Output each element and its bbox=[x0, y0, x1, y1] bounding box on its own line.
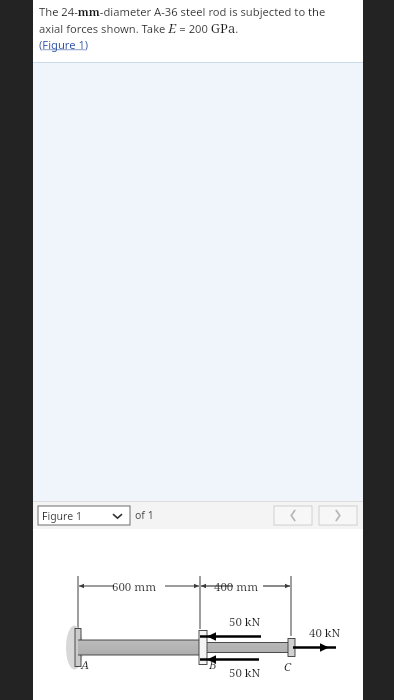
staticText: (Figure 1) bbox=[39, 37, 89, 52]
staticText: 40 kN bbox=[309, 625, 341, 641]
staticText: 50 kN bbox=[229, 614, 261, 630]
staticText: 50 kN bbox=[229, 665, 261, 681]
staticText: of 1 bbox=[135, 508, 154, 522]
button[interactable]: Next figure bbox=[319, 506, 357, 525]
button[interactable]: Figure 1 bbox=[38, 506, 130, 525]
staticText: Figure 1 bbox=[42, 509, 82, 523]
staticText: axial forces shown. Take E = 200 GPa. bbox=[39, 19, 239, 37]
staticText: B bbox=[209, 657, 217, 673]
staticText: C bbox=[284, 659, 292, 675]
staticText: 600 mm bbox=[112, 579, 157, 595]
button[interactable]: Previous figure bbox=[274, 506, 312, 525]
staticText: The 24-mm-diameter A-36 steel rod is sub… bbox=[39, 4, 326, 19]
staticText: A bbox=[81, 657, 90, 673]
button[interactable]: (Figure 1) bbox=[39, 37, 89, 52]
staticText: 400 mm bbox=[214, 579, 259, 595]
